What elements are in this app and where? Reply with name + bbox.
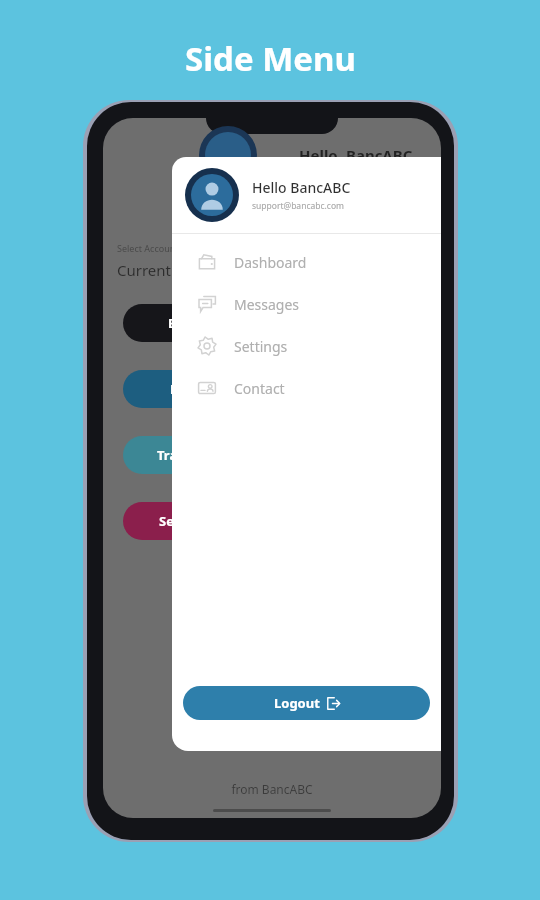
button[interactable]: Dashboard (172, 241, 441, 283)
staticText: Contact (234, 379, 285, 398)
button[interactable]: Transfer (123, 436, 245, 474)
staticText: Buy (168, 314, 193, 332)
staticText: Dashboard (234, 253, 307, 272)
staticText: Current Account (117, 260, 232, 280)
button[interactable]: Settings (172, 325, 441, 367)
staticText: Hello BancABC (252, 178, 351, 197)
staticText: Settings (234, 337, 288, 356)
staticText: support@bancabc.com (252, 200, 344, 212)
button[interactable]: Services (123, 502, 249, 540)
button[interactable]: Contact (172, 367, 441, 409)
staticText: Select Account (117, 242, 179, 254)
button[interactable]: Buy (123, 304, 237, 342)
staticText: Side Menu (185, 36, 356, 81)
staticText: Logout (274, 694, 320, 712)
button[interactable]: Pay (123, 370, 241, 408)
button[interactable]: Messages (172, 283, 441, 325)
staticText: Services (159, 512, 213, 530)
staticText: Messages (234, 295, 300, 314)
button[interactable]: Logout (183, 686, 430, 720)
staticText: from BancABC (103, 781, 441, 797)
staticText: Hello, BancABC (299, 145, 413, 165)
button[interactable]: Hello BancABC (172, 157, 441, 233)
staticText: Pay (170, 380, 194, 398)
staticText: Transfer (157, 446, 211, 464)
